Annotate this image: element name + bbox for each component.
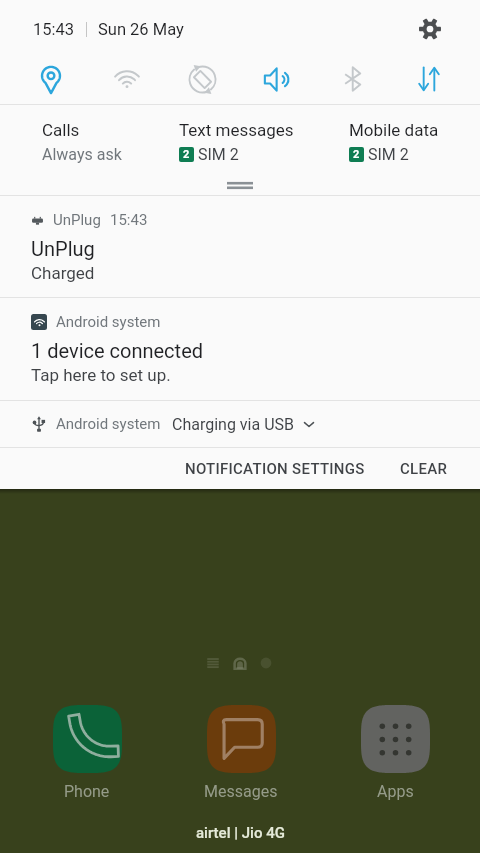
staticText: SIM 2 xyxy=(368,145,409,164)
staticText: Mobile data xyxy=(349,120,439,140)
staticText: 15:43 xyxy=(110,211,148,229)
button[interactable]: Bluetooth xyxy=(329,55,377,103)
staticText: Calls xyxy=(42,120,80,140)
button[interactable]: Settings xyxy=(414,13,446,45)
staticText: Charged xyxy=(31,263,95,283)
button[interactable]: CLEAR xyxy=(388,448,460,489)
button[interactable]: Android system xyxy=(0,401,480,447)
staticText: Phone xyxy=(64,782,110,801)
button[interactable]: Mobile data xyxy=(405,55,453,103)
staticText: NOTIFICATION SETTINGS xyxy=(185,460,365,478)
staticText: Text messages xyxy=(179,120,294,140)
button[interactable]: Calls xyxy=(20,105,160,176)
button[interactable]: NOTIFICATION SETTINGS xyxy=(173,448,377,489)
staticText: Sun 26 May xyxy=(98,20,184,39)
staticText: Charging via USB xyxy=(172,415,295,434)
staticText: Tap here to set up. xyxy=(31,365,171,385)
staticText: UnPlug xyxy=(53,211,101,229)
button[interactable]: Apps xyxy=(345,705,445,801)
staticText: 2 xyxy=(353,148,360,161)
staticText: Android system xyxy=(56,313,161,331)
staticText: Apps xyxy=(377,782,414,801)
button[interactable]: Android system xyxy=(0,298,480,400)
staticText: Always ask xyxy=(42,145,122,164)
staticText: CLEAR xyxy=(400,460,448,478)
button[interactable]: Sound xyxy=(254,55,302,103)
staticText: 1 device connected xyxy=(31,339,204,362)
button[interactable]: Back xyxy=(257,654,275,672)
staticText: 2 xyxy=(183,148,190,161)
button[interactable]: Recent apps xyxy=(204,654,222,672)
button[interactable]: Location xyxy=(27,55,75,103)
button[interactable]: Auto rotate xyxy=(178,55,226,103)
button[interactable]: Home xyxy=(231,654,249,672)
button[interactable]: Wi-Fi xyxy=(103,55,151,103)
button[interactable]: Mobile data xyxy=(329,105,480,176)
staticText: SIM 2 xyxy=(198,145,239,164)
button[interactable]: Messages xyxy=(191,705,291,801)
button[interactable]: Phone xyxy=(37,705,137,801)
staticText: Messages xyxy=(204,782,278,801)
button[interactable]: UnPlug xyxy=(0,196,480,297)
button[interactable]: Text messages xyxy=(159,105,329,176)
staticText: UnPlug xyxy=(31,237,95,260)
staticText: 15:43 xyxy=(33,20,75,39)
staticText: airtel | Jio 4G xyxy=(196,824,285,842)
staticText: Android system xyxy=(56,415,161,433)
